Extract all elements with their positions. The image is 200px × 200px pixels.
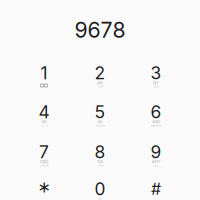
button[interactable]: 2 [72, 59, 128, 95]
staticText: جحخ [153, 84, 159, 88]
staticText: 9 [150, 141, 161, 162]
staticText: GHI [41, 120, 46, 124]
button[interactable]: 7 [16, 138, 72, 174]
staticText: 8 [94, 141, 105, 162]
button[interactable]: 9 [128, 138, 184, 174]
staticText: MNO [152, 120, 159, 124]
staticText: ابتث [97, 84, 103, 88]
staticText: ABC [97, 81, 103, 85]
staticText: 1 [40, 62, 47, 83]
button[interactable]: 8 [72, 138, 128, 174]
staticText: سشص [95, 123, 105, 127]
staticText: ضطظع [150, 123, 161, 127]
button[interactable]: # [128, 175, 184, 200]
staticText: 7 [39, 141, 49, 162]
staticText: 5 [94, 101, 105, 122]
staticText: JKL [97, 120, 103, 124]
staticText: 6 [150, 101, 161, 122]
staticText: لمنه [97, 163, 103, 167]
staticText: وي [153, 163, 158, 167]
button[interactable]: ∗ [16, 173, 72, 200]
staticText: # [151, 179, 161, 199]
staticText: TUV [97, 160, 103, 164]
staticText: دذرز [41, 123, 47, 127]
button[interactable]: 1 voicemail [16, 59, 72, 95]
staticText: 3 [150, 62, 161, 83]
staticText: 0 [94, 178, 105, 199]
staticText: غفقك [39, 163, 48, 167]
staticText: 2 [94, 62, 105, 83]
staticText: DEF [153, 81, 159, 85]
button[interactable]: 4 [16, 98, 72, 134]
button[interactable]: 3 [128, 59, 184, 95]
button[interactable]: 6 [128, 98, 184, 134]
staticText: PQRS [40, 160, 48, 164]
staticText: + [99, 197, 101, 200]
staticText: ∗ [37, 178, 50, 196]
staticText: 4 [38, 101, 49, 122]
button[interactable]: 0 [72, 175, 128, 200]
button[interactable]: Entered number 9678 [15, 16, 185, 44]
button[interactable]: 5 [72, 98, 128, 134]
staticText: 9678 [74, 17, 125, 43]
staticText: WXYZ [151, 160, 160, 164]
